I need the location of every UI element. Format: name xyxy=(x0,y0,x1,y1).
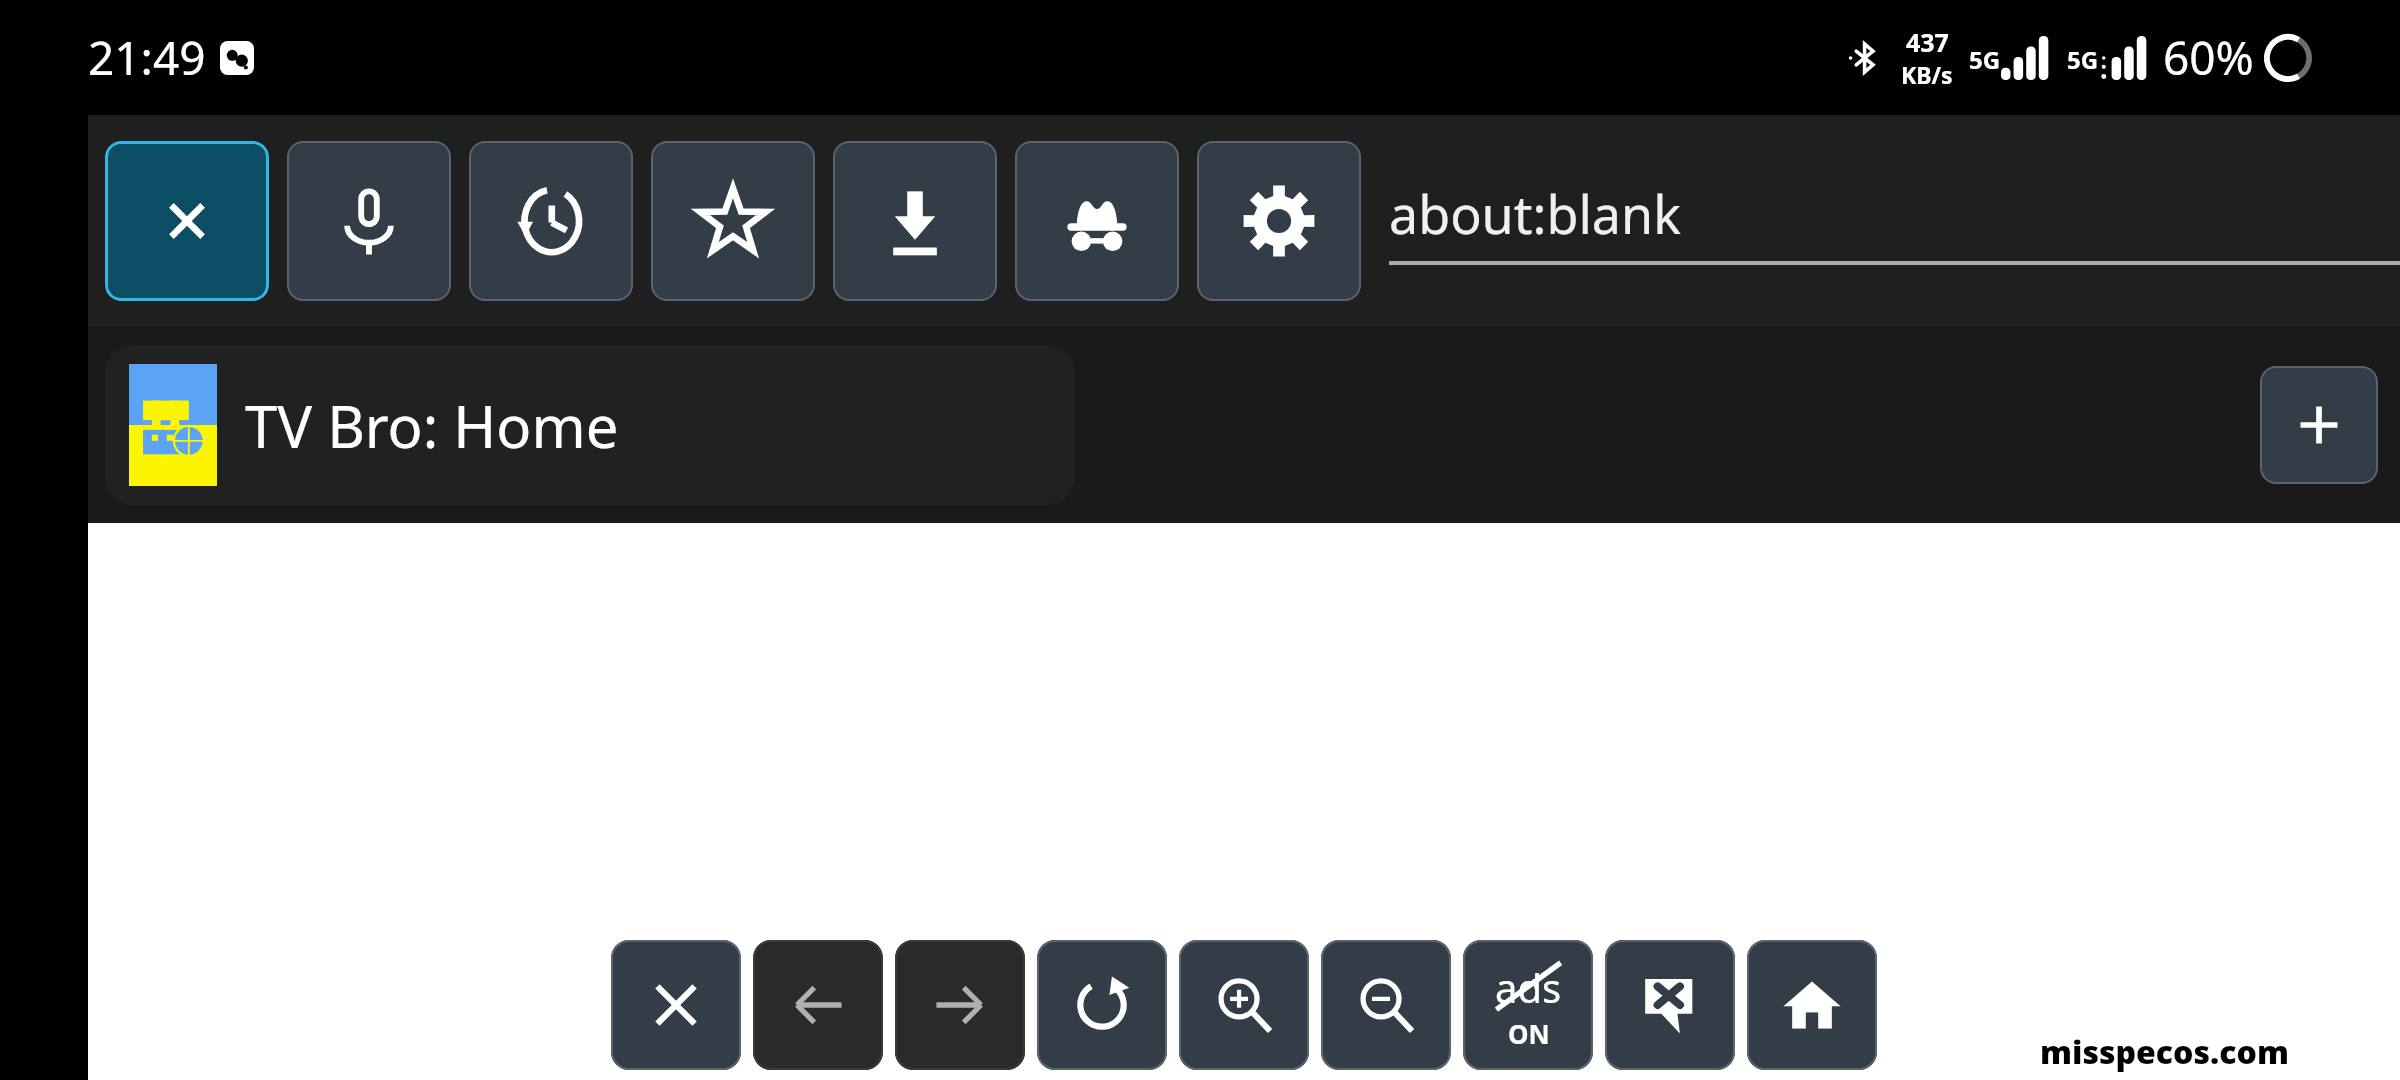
staticText: 60% xyxy=(2163,26,2254,89)
button[interactable]: Close xyxy=(105,141,269,301)
staticText: misspecos.com xyxy=(2040,1030,2289,1074)
button[interactable]: Downloads xyxy=(833,141,997,301)
button[interactable]: Forward xyxy=(895,940,1025,1070)
button[interactable]: Incognito xyxy=(1015,141,1179,301)
button[interactable]: Zoom in xyxy=(1179,940,1309,1070)
button[interactable]: New tab xyxy=(2260,366,2378,484)
button[interactable]: Zoom out xyxy=(1321,940,1451,1070)
staticText: TV Bro: Home xyxy=(245,386,619,465)
staticText: 5G xyxy=(2067,43,2099,76)
button[interactable]: Back xyxy=(753,940,883,1070)
button[interactable]: Block popups xyxy=(1605,940,1735,1070)
button[interactable]: Ad blocker on xyxy=(1463,940,1593,1070)
staticText: about:blank xyxy=(1389,178,1681,249)
button[interactable]: Voice search xyxy=(287,141,451,301)
button[interactable]: Reload xyxy=(1037,940,1167,1070)
button[interactable]: History xyxy=(469,141,633,301)
staticText: KB/s xyxy=(1901,59,1953,90)
staticText: 437 xyxy=(1906,25,1949,59)
button[interactable]: Close xyxy=(611,940,741,1070)
button[interactable]: Home xyxy=(1747,940,1877,1070)
staticText: 5G xyxy=(1969,43,2001,76)
button[interactable]: Bookmarks xyxy=(651,141,815,301)
button[interactable]: Settings xyxy=(1197,141,1361,301)
staticText: 21:49 xyxy=(88,26,206,89)
button[interactable]: TV Bro: Home xyxy=(105,345,1075,505)
staticText: ON xyxy=(1508,1016,1550,1051)
staticText: ads xyxy=(1495,960,1562,1014)
